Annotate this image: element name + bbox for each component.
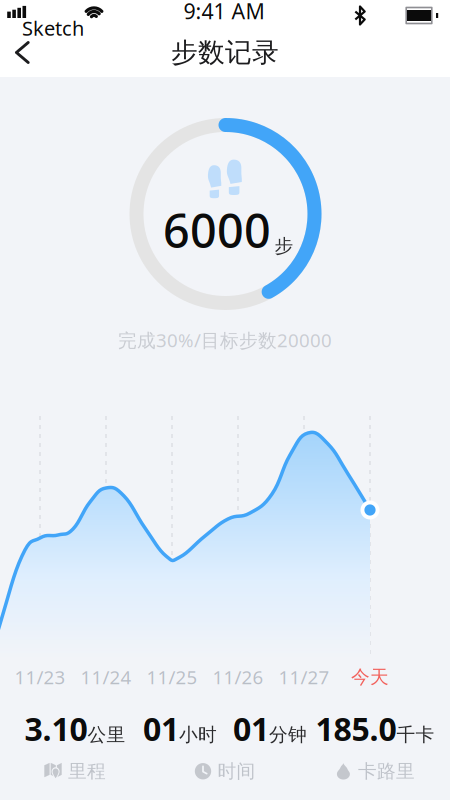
staticText: 11/26 bbox=[212, 665, 263, 689]
staticText: 今天 bbox=[351, 665, 389, 688]
staticText: 时间 bbox=[217, 760, 255, 783]
staticText: 11/24 bbox=[80, 665, 131, 689]
staticText: 01 bbox=[233, 707, 269, 750]
staticText: 步数记录 bbox=[171, 36, 279, 69]
staticText: 分钟 bbox=[269, 723, 307, 746]
staticText: 步 bbox=[274, 234, 293, 257]
staticText: 6000 bbox=[163, 199, 271, 261]
staticText: 完成30%/目标步数20000 bbox=[118, 328, 332, 352]
staticText: 11/25 bbox=[146, 665, 197, 689]
staticText: 公里 bbox=[87, 723, 125, 746]
staticText: 3.10 bbox=[24, 707, 87, 750]
staticText: 11/23 bbox=[14, 665, 65, 689]
staticText: 卡路里 bbox=[358, 760, 415, 783]
button[interactable]: Back bbox=[0, 31, 46, 74]
staticText: 小时 bbox=[179, 723, 217, 746]
staticText: 千卡 bbox=[396, 723, 434, 746]
staticText: 185.0 bbox=[315, 707, 396, 750]
staticText: 11/27 bbox=[278, 665, 329, 689]
staticText: 9:41 AM bbox=[183, 0, 264, 25]
staticText: 里程 bbox=[68, 760, 106, 783]
staticText: 01 bbox=[143, 707, 179, 750]
staticText: Sketch bbox=[22, 15, 84, 41]
